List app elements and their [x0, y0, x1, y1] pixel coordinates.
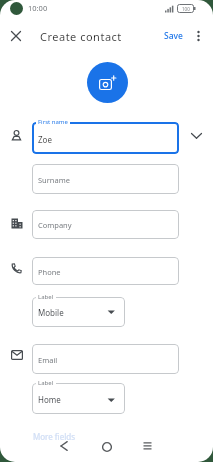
button[interactable]: [32, 297, 125, 327]
button[interactable]: [87, 62, 128, 103]
staticText: 100: [182, 6, 190, 12]
staticText: Email: [38, 355, 58, 365]
staticText: Save: [164, 30, 183, 42]
button[interactable]: [192, 28, 205, 44]
button[interactable]: [32, 383, 125, 414]
staticText: Company: [38, 220, 72, 230]
staticText: More fields: [33, 431, 75, 442]
button[interactable]: Save: [158, 27, 188, 44]
staticText: Label: [38, 293, 54, 301]
button[interactable]: [187, 126, 207, 146]
staticText: Create contact: [40, 29, 122, 44]
button[interactable]: [6, 26, 26, 46]
staticText: Phone: [38, 267, 61, 277]
staticText: Label: [38, 379, 54, 387]
button[interactable]: [97, 437, 117, 457]
button[interactable]: [32, 257, 179, 285]
staticText: Home: [38, 394, 61, 405]
button[interactable]: [32, 344, 179, 374]
button[interactable]: [138, 436, 158, 456]
staticText: Mobile: [38, 307, 64, 318]
staticText: Zoe: [38, 134, 52, 145]
button[interactable]: [54, 437, 74, 456]
button[interactable]: [32, 164, 179, 194]
staticText: 10:00: [28, 3, 48, 13]
button[interactable]: [32, 122, 179, 154]
button[interactable]: [32, 210, 179, 239]
button[interactable]: More fields: [33, 431, 75, 442]
staticText: Surname: [38, 175, 70, 185]
staticText: First name: [38, 118, 68, 126]
